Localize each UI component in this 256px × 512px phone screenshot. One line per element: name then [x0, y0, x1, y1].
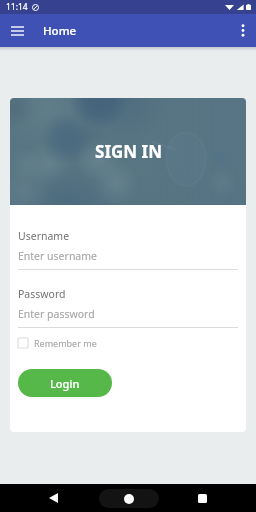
- staticText: SIGN IN: [95, 140, 162, 163]
- staticText: Password: [18, 287, 66, 301]
- button[interactable]: Home: [99, 489, 159, 508]
- staticText: Username: [18, 229, 70, 243]
- button[interactable]: Back: [39, 484, 67, 512]
- button[interactable]: Menu: [0, 14, 34, 47]
- button[interactable]: More options: [229, 14, 256, 47]
- button[interactable]: Recents: [188, 484, 216, 512]
- staticText: Enter password: [18, 307, 95, 321]
- staticText: 11:14: [6, 1, 28, 13]
- staticText: Enter username: [18, 249, 98, 263]
- button[interactable]: Remember me: [18, 337, 97, 349]
- staticText: Remember me: [34, 337, 97, 349]
- staticText: Login: [50, 376, 80, 391]
- staticText: Home: [43, 23, 77, 39]
- button[interactable]: Login: [18, 369, 112, 397]
